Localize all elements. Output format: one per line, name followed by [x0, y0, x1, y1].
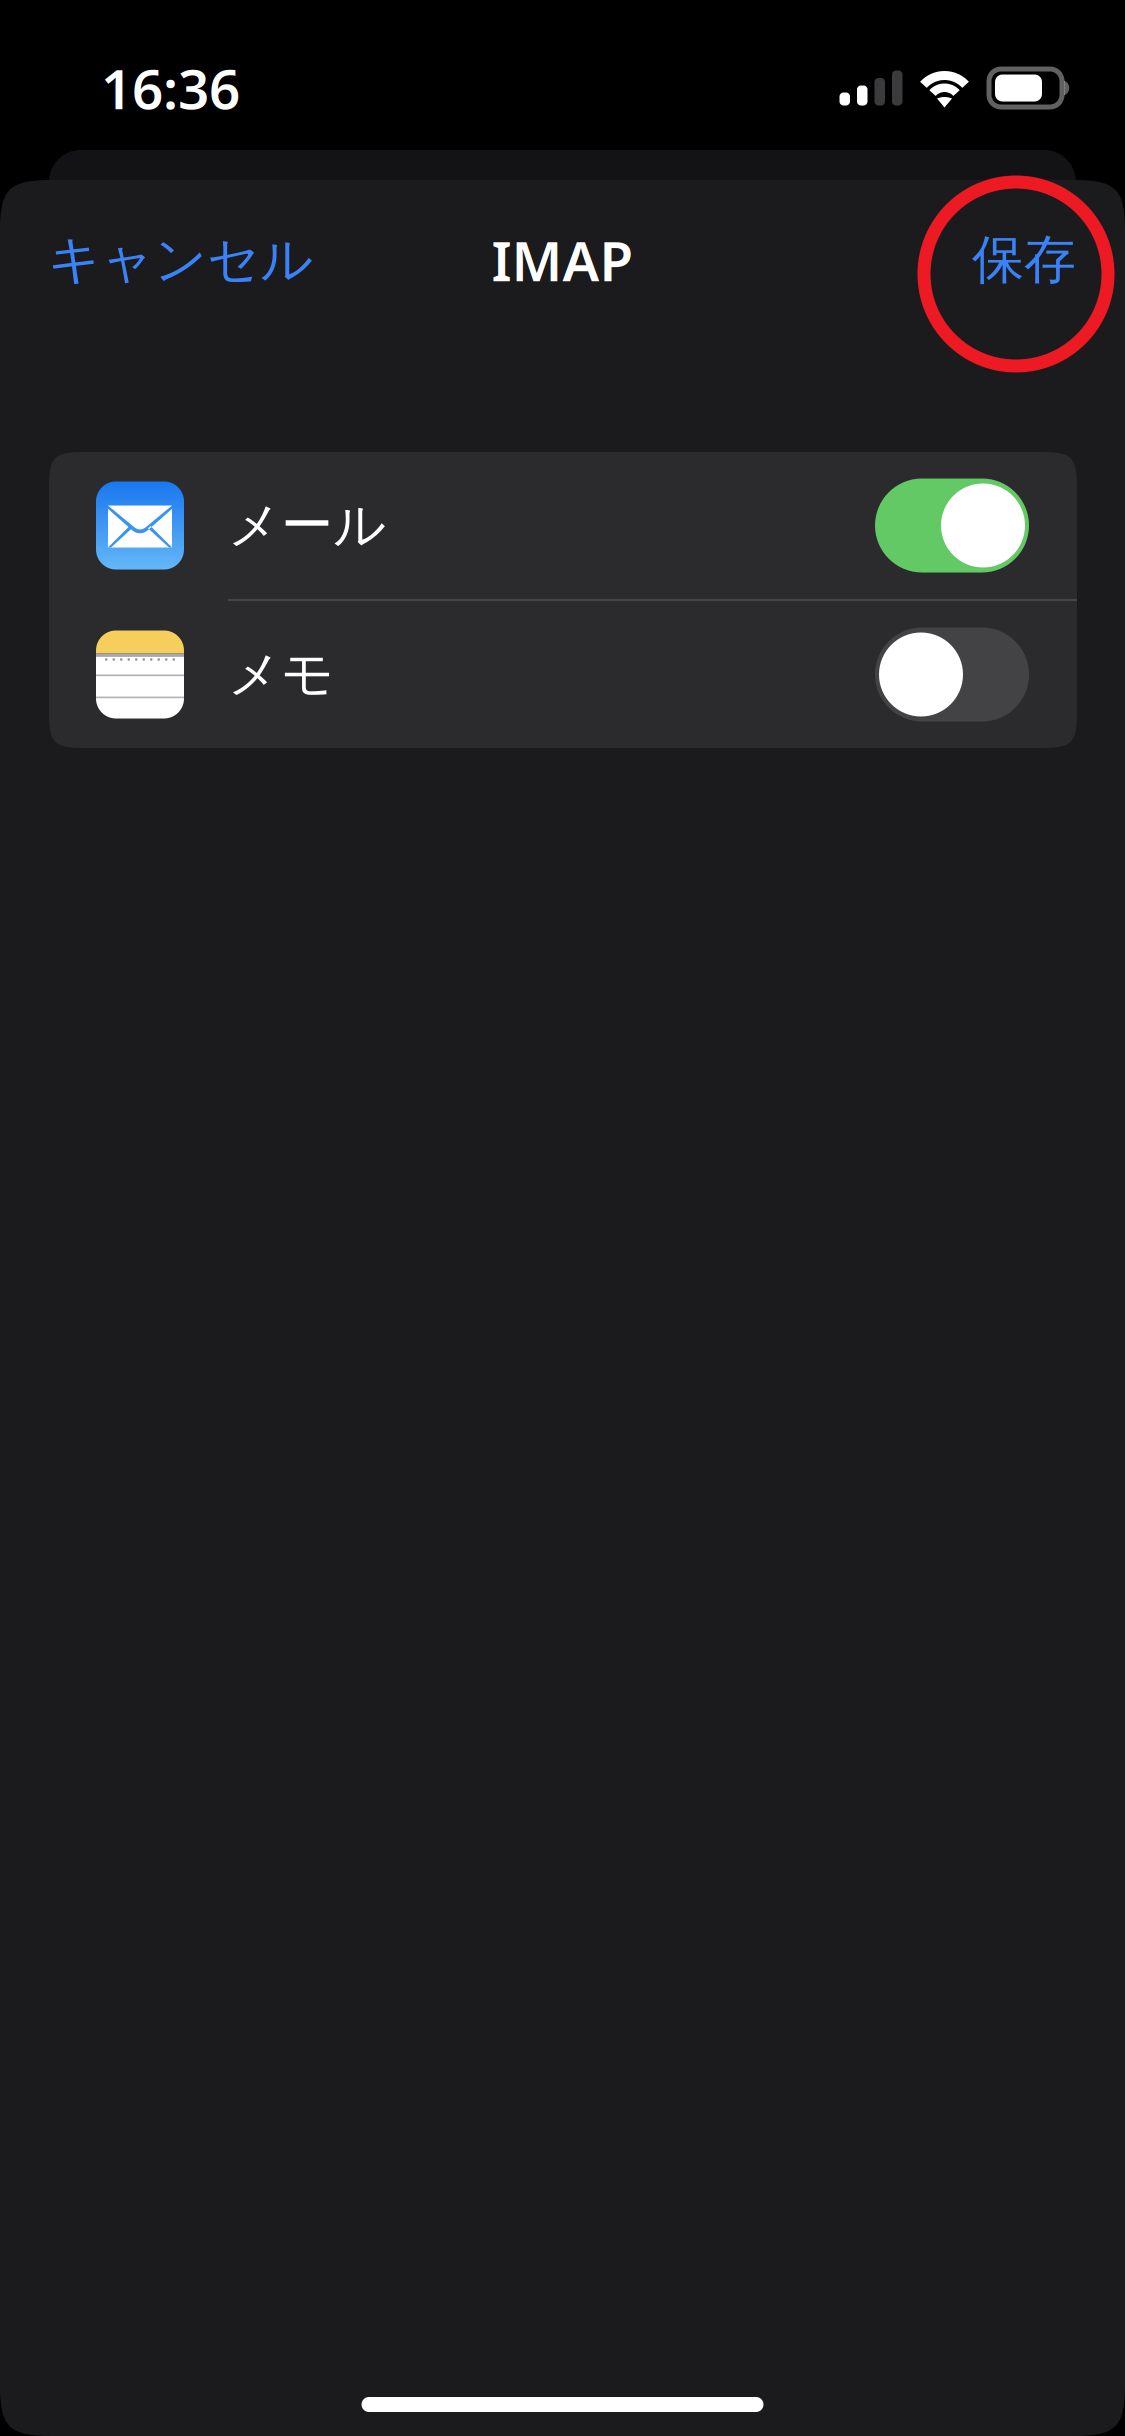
button[interactable]: キャンセル — [0, 202, 339, 318]
staticText: 16:36 — [101, 52, 240, 124]
button[interactable]: 保存 — [946, 202, 1125, 318]
button[interactable]: メモ オフ — [875, 627, 1029, 721]
staticText: IMAP — [491, 224, 633, 296]
button[interactable]: メール オン — [875, 478, 1029, 572]
staticText: メモ — [228, 643, 334, 706]
staticText: 保存 — [972, 228, 1076, 292]
staticText: キャンセル — [48, 228, 313, 292]
staticText: メール — [228, 494, 386, 557]
